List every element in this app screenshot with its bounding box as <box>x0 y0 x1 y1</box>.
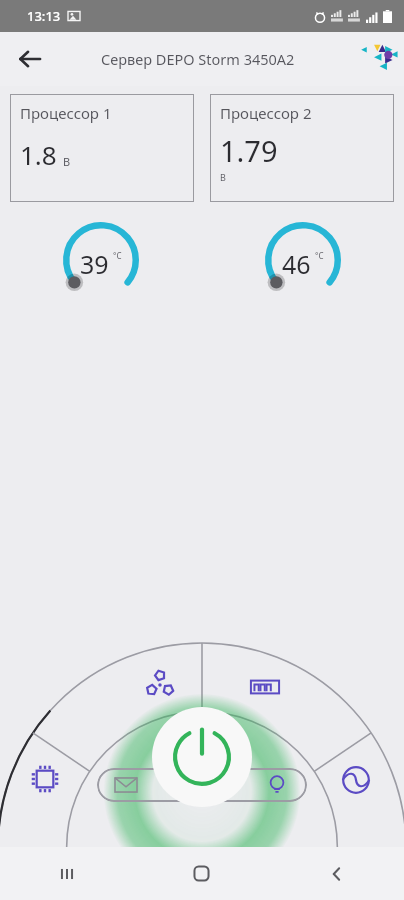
button[interactable]: 39 <box>53 212 149 308</box>
staticText: Сервер DEPO Storm 3450A2 <box>101 49 295 69</box>
staticText: °C <box>315 250 324 261</box>
button[interactable]: Cooling <box>138 663 182 707</box>
button[interactable]: Back <box>8 37 52 81</box>
button[interactable]: Memory <box>243 665 287 709</box>
button[interactable]: Power <box>152 707 252 807</box>
staticText: 39 <box>80 247 109 281</box>
button[interactable]: Processor <box>23 757 67 801</box>
button[interactable]: Quick actions <box>97 768 307 802</box>
staticText: В <box>63 154 71 169</box>
staticText: Процессор 2 <box>220 103 312 123</box>
staticText: Процессор 1 <box>20 103 112 123</box>
button[interactable]: 46 <box>255 212 351 308</box>
staticText: 46 <box>282 247 311 281</box>
button[interactable]: Recents <box>0 847 134 900</box>
staticText: 13:13 <box>27 7 61 25</box>
button[interactable]: Процессор 1 <box>10 94 194 202</box>
staticText: 1.79 <box>220 131 278 170</box>
staticText: В <box>220 171 226 183</box>
button[interactable]: Процессор 2 <box>210 94 394 202</box>
button[interactable]: Back <box>269 847 404 900</box>
button[interactable]: Home <box>134 847 269 900</box>
staticText: 1.8 <box>20 137 57 172</box>
button[interactable]: Power supply <box>334 758 378 802</box>
staticText: °C <box>113 250 122 261</box>
